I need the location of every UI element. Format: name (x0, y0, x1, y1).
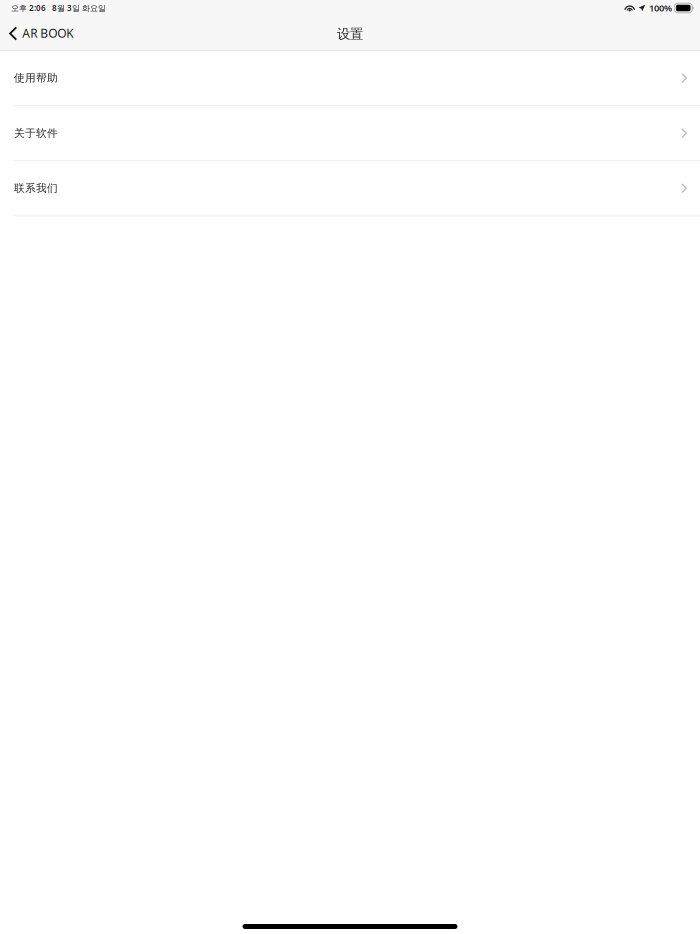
staticText: 100% (649, 2, 672, 14)
staticText: 关于软件 (14, 127, 58, 140)
staticText: 使用帮助 (14, 71, 58, 85)
staticText: 联系我们 (14, 182, 58, 195)
button[interactable]: 关于软件 (0, 106, 700, 161)
staticText: 오후 2:06 8월 3일 화요일 (11, 3, 106, 13)
button[interactable]: 联系我们 (0, 161, 700, 216)
staticText: AR BOOK (22, 25, 73, 41)
button[interactable]: AR BOOK (0, 19, 83, 47)
staticText: 设置 (337, 26, 363, 42)
button[interactable]: 使用帮助 (0, 51, 700, 106)
